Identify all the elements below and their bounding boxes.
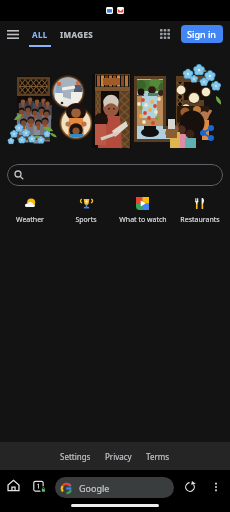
staticText: Sign in [187, 28, 217, 40]
staticText: What to watch [119, 215, 167, 225]
button[interactable]: Search [7, 164, 223, 186]
button[interactable]: Google [55, 477, 174, 498]
button[interactable]: Switch tabs [29, 476, 49, 496]
staticText: Restaurants [180, 215, 220, 225]
button[interactable]: Privacy [105, 451, 132, 462]
staticText: Terms [146, 451, 170, 462]
staticText: ALL [32, 29, 48, 40]
button[interactable]: What to watch [114, 196, 171, 226]
button[interactable]: Weather [2, 196, 58, 226]
staticText: Google [79, 482, 110, 494]
button[interactable]: Sign in [181, 25, 223, 43]
button[interactable]: Home [4, 476, 23, 495]
button[interactable]: Sports [58, 196, 114, 226]
button[interactable]: More options [206, 477, 225, 496]
staticText: Settings [60, 451, 91, 462]
staticText: Privacy [105, 451, 132, 462]
button[interactable]: Reload [180, 477, 199, 496]
button[interactable]: Terms [146, 451, 170, 462]
button[interactable]: Restaurants [171, 196, 228, 226]
staticText: Sports [75, 215, 97, 225]
button[interactable]: Settings [60, 451, 91, 462]
staticText: Weather [16, 215, 44, 225]
button[interactable]: ALL [29, 21, 51, 47]
button[interactable]: Menu [0, 21, 26, 47]
staticText: IMAGES [60, 29, 94, 40]
button[interactable]: Google apps [152, 21, 178, 47]
button[interactable]: IMAGES [60, 21, 94, 47]
